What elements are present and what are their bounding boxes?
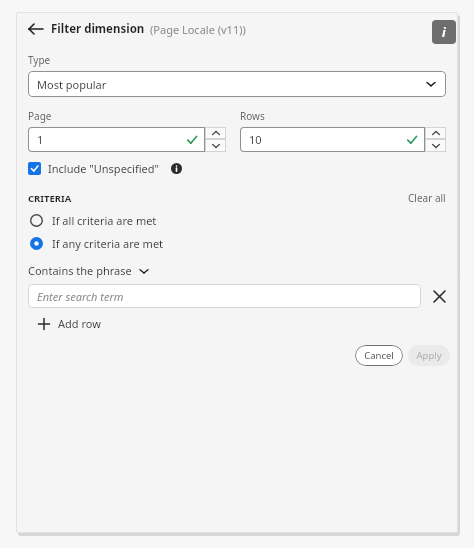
staticText: Page — [28, 109, 52, 123]
button[interactable]: Enter search term — [28, 284, 421, 308]
button[interactable]: Include "Unspecified" — [28, 161, 182, 176]
button[interactable]: Cancel — [355, 345, 403, 366]
button[interactable]: Back — [28, 21, 246, 37]
button[interactable]: Add row — [38, 316, 101, 331]
staticText: i — [442, 24, 446, 40]
button[interactable]: If all criteria are met — [30, 213, 458, 228]
staticText: 10 — [249, 132, 262, 147]
staticText: Apply — [416, 349, 442, 362]
button[interactable]: Information — [432, 20, 456, 44]
button[interactable]: More information — [171, 163, 182, 174]
staticText: If any criteria are met — [52, 236, 164, 251]
staticText: If all criteria are met — [52, 213, 157, 228]
button[interactable]: If any criteria are met — [30, 236, 458, 251]
button[interactable]: Apply — [408, 345, 450, 366]
staticText: Enter search term — [37, 289, 124, 304]
other: Back — [28, 21, 44, 37]
button[interactable]: Decrement — [425, 139, 446, 152]
staticText: Filter dimension — [51, 21, 145, 37]
staticText: Cancel — [364, 349, 394, 362]
staticText: Add row — [58, 316, 101, 331]
button[interactable]: Most popular — [28, 71, 446, 97]
staticText: Rows — [240, 109, 265, 123]
button[interactable]: Increment — [425, 127, 446, 139]
staticText: (Page Locale (v11)) — [150, 22, 246, 37]
button[interactable]: Increment — [205, 127, 226, 139]
staticText: 1 — [37, 132, 44, 147]
button[interactable]: Clear all — [408, 191, 446, 205]
button[interactable]: 10 — [240, 127, 425, 152]
staticText: Clear all — [408, 191, 446, 205]
staticText: Include "Unspecified" — [48, 161, 160, 176]
staticText: Type — [28, 53, 51, 67]
staticText: Contains the phrase — [28, 263, 132, 278]
button[interactable]: 1 — [28, 127, 205, 152]
staticText: Most popular — [37, 77, 107, 92]
button[interactable]: Remove row — [430, 287, 448, 305]
button[interactable]: Contains the phrase — [28, 263, 149, 278]
staticText: CRITERIA — [28, 192, 72, 205]
button[interactable]: Decrement — [205, 139, 226, 152]
